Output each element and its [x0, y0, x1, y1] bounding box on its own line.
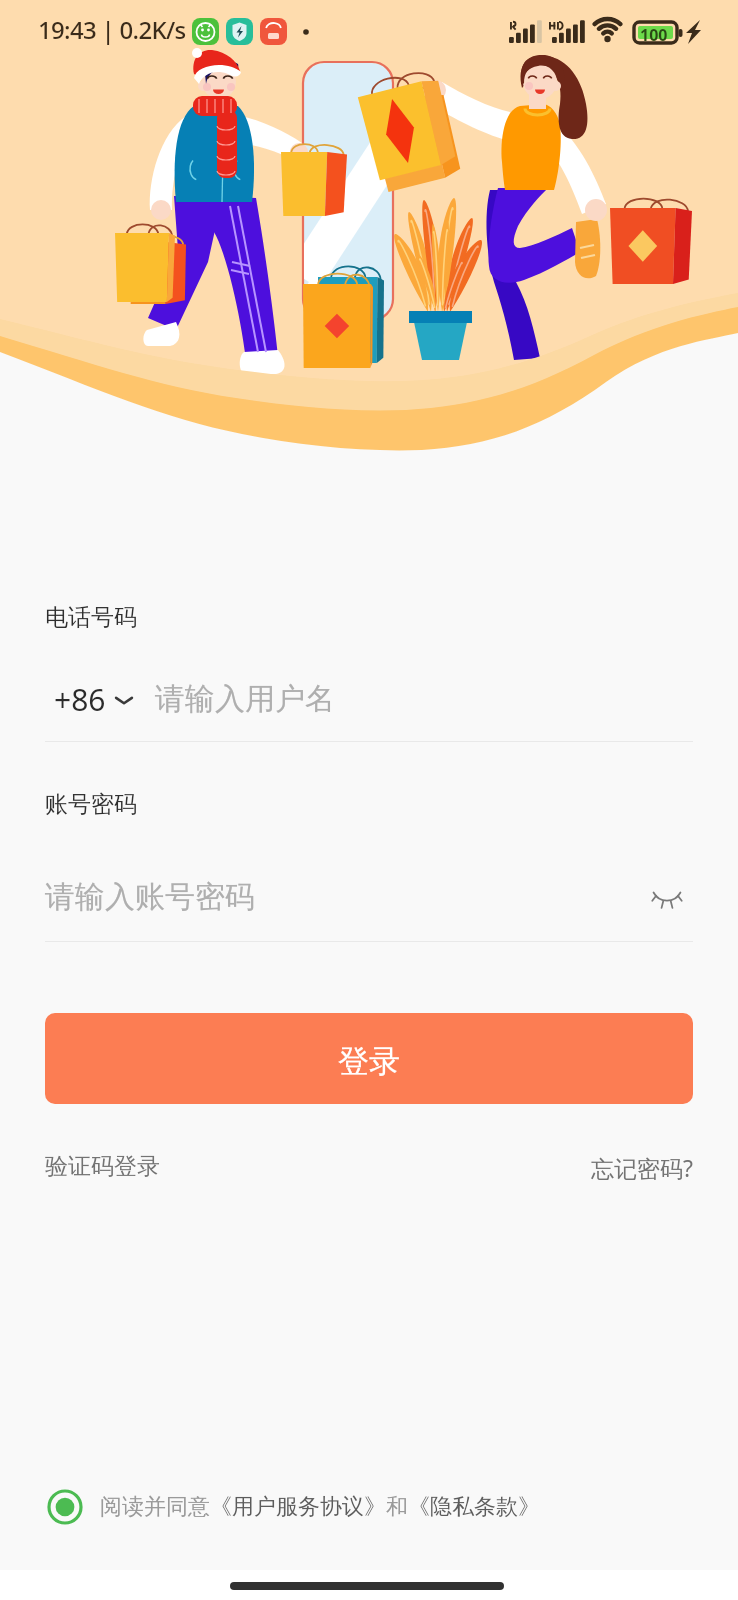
staticText: +86 — [54, 679, 106, 720]
staticText: 账号密码 — [45, 790, 137, 819]
button[interactable]: 请输入账号密码 — [45, 878, 641, 916]
button[interactable]: Agree to terms — [45, 1487, 85, 1527]
button[interactable]: 登录 — [45, 1013, 693, 1104]
button[interactable]: Show password — [641, 871, 693, 923]
button[interactable]: 验证码登录 — [45, 1152, 160, 1181]
staticText: 100 — [640, 24, 668, 46]
button[interactable]: 忘记密码? — [591, 1152, 693, 1183]
button[interactable]: +86 — [45, 679, 141, 720]
staticText: 电话号码 — [45, 603, 137, 632]
button[interactable]: 阅读并同意《用户服务协议》和《隐私条款》 — [100, 1493, 540, 1521]
staticText: 19:43 | 0.2K/s — [38, 13, 186, 46]
staticText: 登录 — [338, 1042, 400, 1081]
button[interactable]: 请输入用户名 — [155, 680, 335, 718]
